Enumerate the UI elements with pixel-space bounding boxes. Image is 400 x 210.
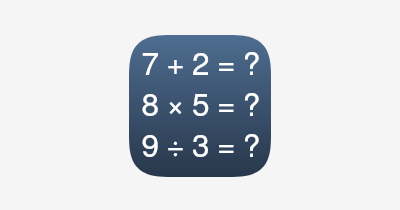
- button[interactable]: 7 + 2 = ? 8 × 5 = ? 9 ÷ 3 = ?: [129, 35, 271, 177]
- staticText: 7 + 2 = ? 8 × 5 = ? 9 ÷ 3 = ?: [141, 42, 260, 165]
